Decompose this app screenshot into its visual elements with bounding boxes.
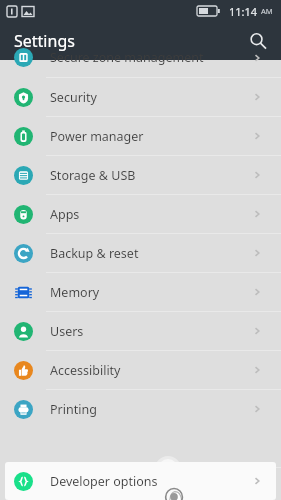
button[interactable]: Apps — [0, 194, 281, 233]
staticText: Settings — [14, 30, 75, 52]
button[interactable]: Accessibility — [0, 350, 281, 389]
staticText: Backup & reset — [50, 245, 139, 262]
staticText: AM — [261, 6, 273, 16]
staticText: About phone — [50, 468, 127, 478]
staticText: 11:14 — [229, 4, 258, 19]
staticText: Accessibility — [50, 362, 121, 379]
button[interactable]: Memory — [0, 272, 281, 311]
button[interactable]: Printing — [0, 389, 281, 428]
staticText: Storage & USB — [50, 167, 136, 184]
button[interactable]: Storage & USB — [0, 155, 281, 194]
button[interactable]: Developer options — [5, 462, 276, 500]
staticText: Developer options — [50, 473, 158, 490]
button[interactable]: Search — [241, 24, 275, 58]
staticText: Users — [50, 323, 84, 340]
staticText: Security — [50, 89, 97, 106]
button[interactable]: Backup & reset — [0, 233, 281, 272]
button[interactable]: Power manager — [0, 116, 281, 155]
button[interactable]: About phone — [0, 467, 281, 478]
staticText: Memory — [50, 284, 100, 301]
button[interactable]: Secure zone management — [0, 38, 281, 77]
staticText: Power manager — [50, 128, 144, 145]
staticText: Printing — [50, 401, 97, 418]
staticText: Secure zone management — [50, 49, 204, 66]
button[interactable]: Users — [0, 311, 281, 350]
button[interactable]: Security — [0, 77, 281, 116]
staticText: Apps — [50, 206, 80, 223]
